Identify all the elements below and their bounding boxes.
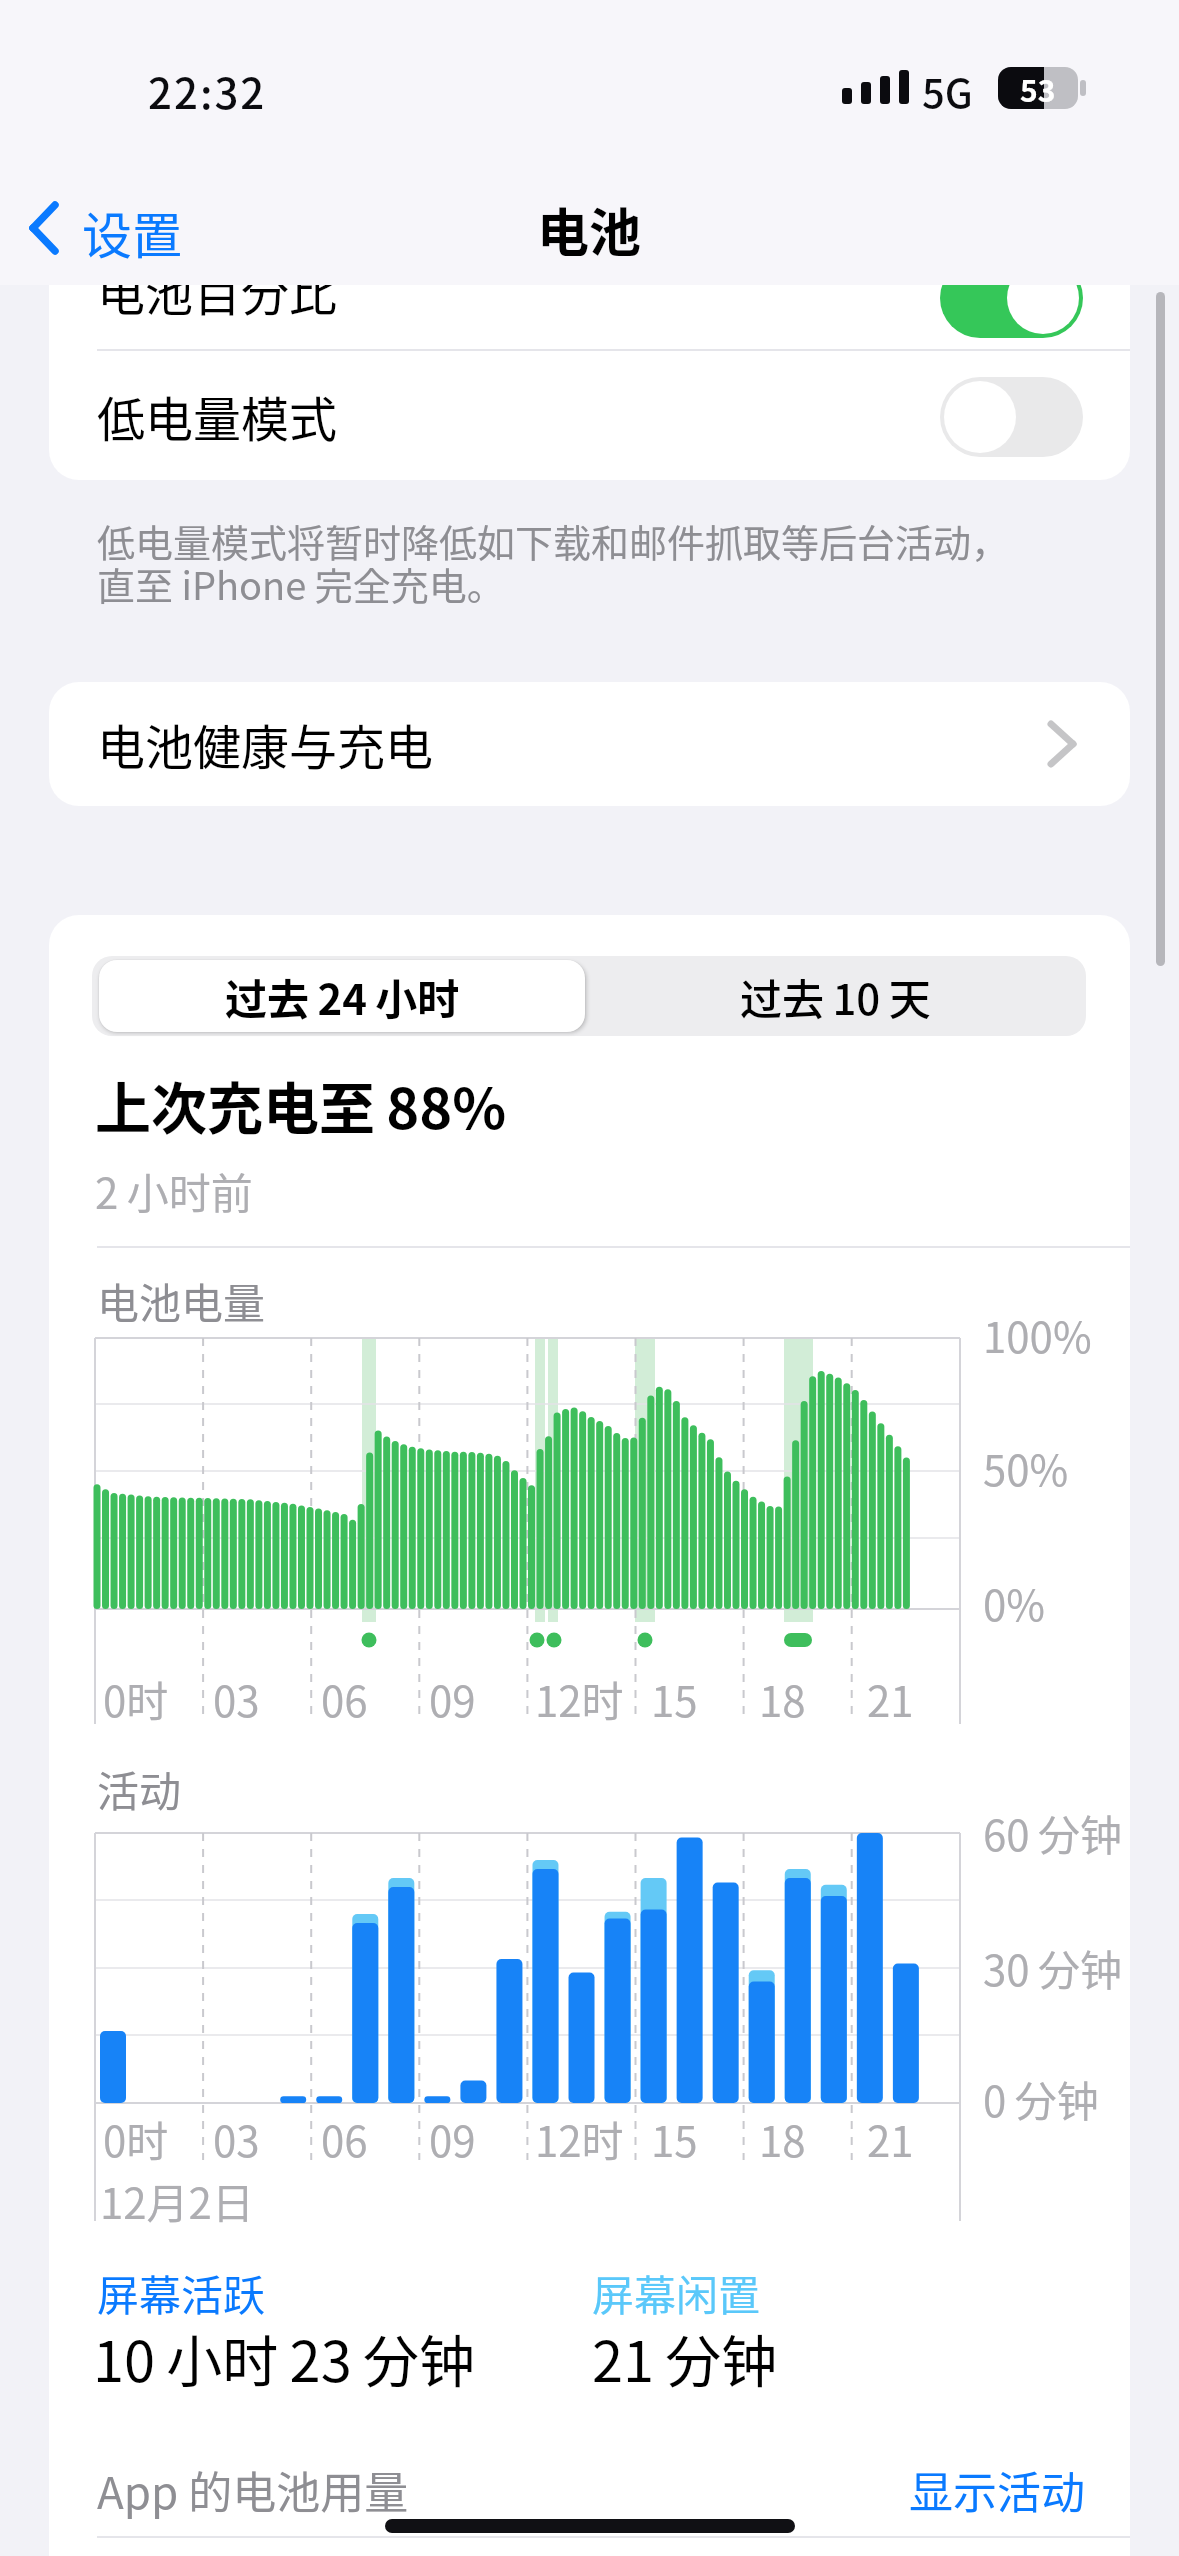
staticText: 06 <box>321 2108 368 2169</box>
staticText: 上次充电至 88% <box>95 1064 507 1145</box>
staticText: 09 <box>429 2108 476 2169</box>
button[interactable]: 过去 10 天 <box>585 956 1086 1036</box>
staticText: 06 <box>321 1668 368 1729</box>
staticText: 屏幕闲置 <box>592 2262 761 2323</box>
staticText: 21 分钟 <box>592 2317 778 2398</box>
staticText: 直至 iPhone 完全充电。 <box>97 556 505 611</box>
button[interactable]: 电池健康与充电 <box>49 682 1130 806</box>
staticText: 21 <box>867 1668 914 1729</box>
staticText: 设置 <box>82 196 182 260</box>
staticText: 30 分钟 <box>983 1937 1123 1998</box>
staticText: 21 <box>867 2108 914 2169</box>
staticText: 03 <box>213 2108 260 2169</box>
staticText: 100% <box>983 1304 1092 1365</box>
staticText: 电池 <box>537 192 642 256</box>
staticText: 22:32 <box>148 60 267 121</box>
staticText: 低电量模式将暂时降低如下载和邮件抓取等后台活动， <box>97 513 1010 568</box>
staticText: 10 小时 23 分钟 <box>93 2317 475 2398</box>
staticText: 0% <box>983 1572 1045 1633</box>
staticText: 03 <box>213 1668 260 1729</box>
staticText: 过去 24 小时 <box>225 966 460 1027</box>
staticText: 0 分钟 <box>983 2068 1099 2129</box>
staticText: 12时 <box>535 2108 624 2169</box>
button[interactable]: 低电量模式 <box>49 351 1130 480</box>
staticText: 0时 <box>103 1668 169 1729</box>
staticText: 53 <box>1020 67 1056 109</box>
staticText: 2 小时前 <box>95 1160 253 1221</box>
staticText: 60 分钟 <box>983 1802 1123 1863</box>
button[interactable] <box>940 258 1083 338</box>
staticText: 15 <box>651 2108 698 2169</box>
staticText: 屏幕活跃 <box>97 2262 266 2323</box>
staticText: 电池电量 <box>97 1270 266 1331</box>
staticText: 09 <box>429 1668 476 1729</box>
staticText: 低电量模式 <box>97 381 338 451</box>
staticText: 18 <box>759 1668 806 1729</box>
staticText: 12时 <box>535 1668 624 1729</box>
button[interactable]: 设置 <box>28 196 182 260</box>
button[interactable]: 过去 24 小时 <box>99 960 585 1032</box>
staticText: 18 <box>759 2108 806 2169</box>
button[interactable]: App 的电池用量 <box>49 2440 1130 2540</box>
button[interactable] <box>940 377 1083 457</box>
staticText: 电池健康与充电 <box>97 709 434 779</box>
staticText: 活动 <box>97 1758 182 1819</box>
staticText: 0时 <box>103 2108 169 2169</box>
staticText: 过去 10 天 <box>740 966 931 1027</box>
staticText: 5G <box>922 62 973 120</box>
staticText: 显示活动 <box>909 2458 1085 2522</box>
staticText: 15 <box>651 1668 698 1729</box>
staticText: 电池百分比 <box>97 255 338 325</box>
staticText: 50% <box>983 1437 1069 1498</box>
staticText: App 的电池用量 <box>97 2458 409 2522</box>
staticText: 12月2日 <box>100 2170 254 2231</box>
